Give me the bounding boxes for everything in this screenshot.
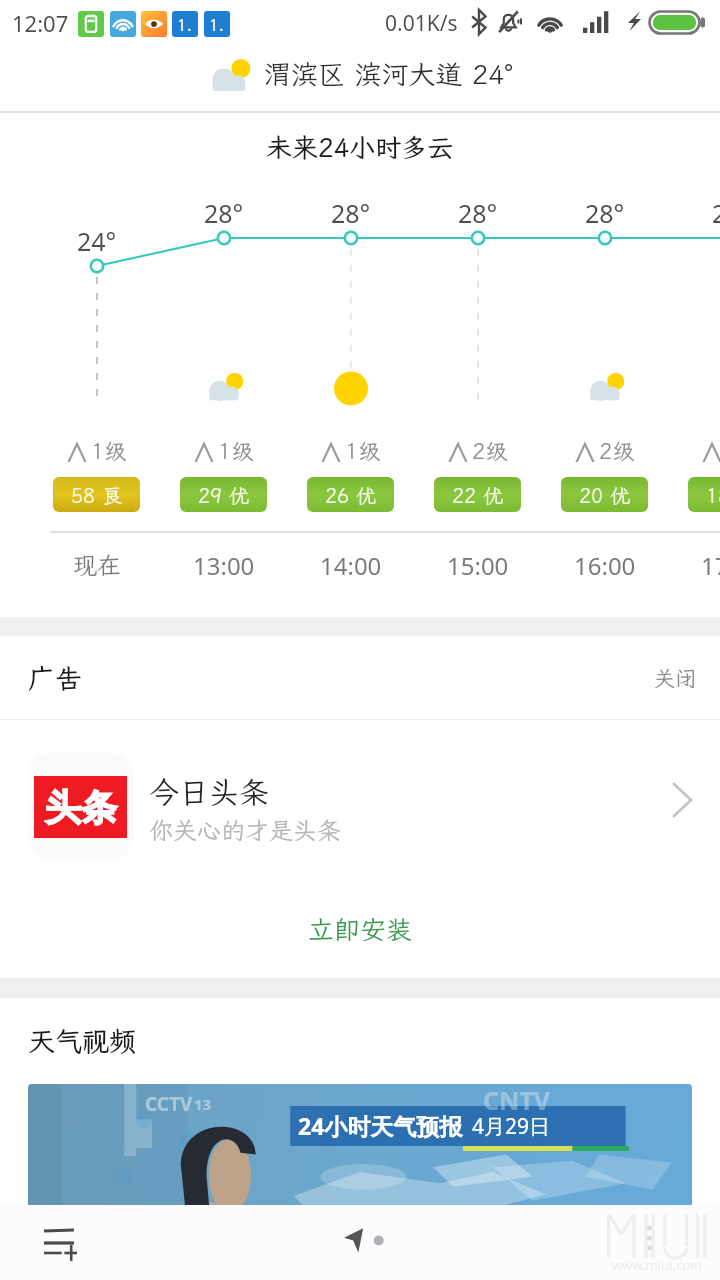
staticText: 现在 [73, 549, 121, 581]
staticText: CCTV [145, 1091, 193, 1117]
staticText: 15:00 [447, 549, 509, 582]
button[interactable]: 20 优 [561, 477, 648, 512]
staticText: 17:00 [701, 549, 720, 582]
staticText: 2级 [599, 436, 635, 465]
staticText: 1级 [218, 436, 254, 465]
staticText: 20 优 [579, 482, 630, 508]
staticText: 天气视频 [28, 1023, 136, 1059]
button[interactable]: 头条 [0, 720, 720, 880]
button[interactable]: Menu [32, 1213, 90, 1271]
staticText: 16:00 [574, 549, 636, 582]
staticText: 广告 [28, 660, 82, 696]
staticText: www.miui.com [612, 1256, 703, 1274]
staticText: 1. [209, 14, 225, 35]
staticText: 立即安装 [308, 912, 413, 946]
staticText: 22 优 [452, 482, 503, 508]
staticText: 24小时天气预报 [298, 1110, 463, 1141]
staticText: CNTV [483, 1084, 551, 1117]
staticText: 28° [585, 196, 625, 230]
staticText: 28° [712, 196, 720, 230]
staticText: 头条 [45, 785, 117, 830]
staticText: 1级 [345, 436, 381, 465]
staticText: 2级 [472, 436, 508, 465]
button[interactable]: 29 优 [180, 477, 267, 512]
staticText: 28° [331, 196, 371, 230]
staticText: 你关心的才是头条 [149, 814, 341, 846]
button[interactable]: 22 优 [434, 477, 521, 512]
staticText: 1. [177, 14, 193, 35]
staticText: 58 良 [71, 482, 122, 508]
button[interactable]: 26 优 [307, 477, 394, 512]
staticText: 未来24小时多云 [266, 130, 454, 164]
staticText: 0.01K/s [385, 9, 458, 38]
button[interactable]: 立即安装 [296, 900, 425, 958]
staticText: 关闭 [654, 664, 696, 692]
staticText: 13:00 [193, 549, 255, 582]
button[interactable]: 24小时天气预报 [28, 1084, 692, 1244]
staticText: 今日头条 [149, 772, 269, 812]
staticText: 1级 [91, 436, 127, 465]
staticText: 14:00 [320, 549, 382, 582]
staticText: 渭滨区 滨河大道 24° [264, 56, 513, 92]
button[interactable]: 关闭 [648, 658, 702, 698]
staticText: 18 优 [706, 482, 720, 508]
button[interactable]: Home [328, 1215, 390, 1265]
staticText: 28° [204, 196, 244, 230]
staticText: 12:07 [12, 8, 69, 38]
staticText: 26 优 [325, 482, 376, 508]
staticText: 13 [194, 1094, 212, 1114]
staticText: 28° [458, 196, 498, 230]
staticText: 29 优 [198, 482, 249, 508]
staticText: 24° [77, 224, 117, 258]
staticText: 4月29日 [472, 1112, 551, 1141]
button[interactable]: 58 良 [53, 477, 140, 512]
button[interactable]: 18 优 [688, 477, 720, 512]
button[interactable]: 渭滨区 滨河大道 24° [200, 45, 513, 103]
